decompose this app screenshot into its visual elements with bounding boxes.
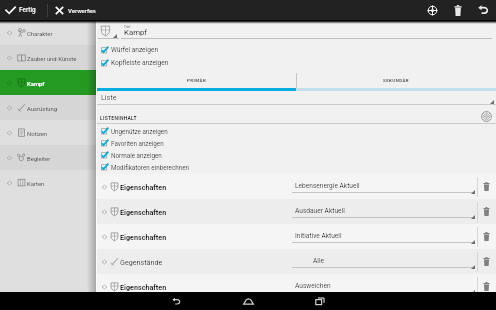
staticText: Liste — [101, 93, 117, 101]
staticText: Eigenschaften — [120, 283, 167, 291]
button[interactable]: Titel — [121, 23, 492, 39]
button[interactable]: Initiative Aktuell — [292, 224, 475, 249]
staticText: Würfel anzeigen — [111, 46, 159, 54]
button[interactable] — [98, 23, 119, 39]
button[interactable]: Gegenstände — [97, 249, 496, 274]
button[interactable]: Alle — [292, 249, 475, 274]
staticText: Notizen — [27, 131, 48, 138]
button[interactable]: Zeile löschen — [480, 280, 493, 293]
button[interactable]: Fertig — [0, 0, 47, 20]
button[interactable] — [97, 91, 496, 105]
staticText: Eigenschaften — [120, 183, 167, 191]
button[interactable]: Eigenschaften — [97, 199, 496, 224]
staticText: Karten — [27, 181, 45, 188]
staticText: Zauber und Künste — [27, 56, 77, 63]
button[interactable]: Würfel anzeigen — [97, 43, 496, 56]
button[interactable]: Übersicht — [298, 292, 342, 310]
staticText: Gegenstände — [120, 258, 163, 266]
button[interactable]: Ausrüstung — [0, 95, 96, 120]
staticText: Kampf — [27, 81, 45, 88]
staticText: Kampf — [124, 28, 148, 37]
button[interactable]: Eigenschaften — [97, 174, 496, 199]
button[interactable]: Zeile löschen — [480, 205, 493, 218]
button[interactable]: Lebensenergie Aktuell — [292, 174, 475, 199]
button[interactable]: Ungenütze anzeigen — [97, 125, 496, 137]
staticText: Alle — [313, 257, 325, 265]
button[interactable]: Verwerfen — [48, 0, 104, 20]
button[interactable]: Normale anzeigen — [97, 149, 496, 161]
button[interactable]: Zauber und Künste — [0, 45, 96, 70]
button[interactable]: Eigenschaften — [97, 274, 496, 299]
button[interactable]: Rückgängig — [470, 0, 496, 20]
staticText: Fertig — [19, 6, 36, 14]
button[interactable]: Hinzufügen — [420, 0, 445, 20]
button[interactable]: Zeile löschen — [480, 230, 493, 243]
button[interactable]: Notizen — [0, 120, 96, 145]
button[interactable]: Kopfleiste anzeigen — [97, 56, 496, 69]
button[interactable]: Löschen — [445, 0, 470, 20]
staticText: Ausdauer Aktuell — [295, 207, 345, 215]
button[interactable]: Modifikatoren einberechnen — [97, 161, 496, 173]
staticText: Favoriten anzeigen — [111, 140, 164, 147]
staticText: SEKUNDÄR — [383, 78, 410, 83]
button[interactable]: Zeile löschen — [480, 255, 493, 268]
staticText: Charakter — [27, 31, 53, 38]
staticText: Ungenütze anzeigen — [111, 128, 168, 135]
button[interactable]: Würfeln — [479, 109, 493, 123]
button[interactable]: Zeile löschen — [480, 180, 493, 193]
button[interactable]: SEKUNDÄR — [296, 71, 496, 91]
staticText: Normale anzeigen — [111, 152, 162, 159]
button[interactable]: Kampf — [0, 70, 96, 95]
staticText: Eigenschaften — [120, 208, 167, 216]
button[interactable]: Karten — [0, 170, 96, 195]
staticText: Kopfleiste anzeigen — [111, 59, 169, 67]
button[interactable]: Ausweichen — [292, 274, 475, 299]
staticText: Ausrüstung — [27, 106, 58, 113]
staticText: Verwerfen — [68, 7, 96, 14]
button[interactable]: PRIMÄR — [97, 71, 296, 91]
staticText: Eigenschaften — [120, 233, 167, 241]
button[interactable]: Eigenschaften — [97, 224, 496, 249]
staticText: Modifikatoren einberechnen — [111, 164, 190, 171]
button[interactable]: Charakter — [0, 20, 96, 45]
staticText: Initiative Aktuell — [295, 232, 342, 240]
button[interactable]: Begleiter — [0, 145, 96, 170]
staticText: LISTENINHALT — [100, 115, 137, 121]
staticText: Lebensenergie Aktuell — [295, 182, 360, 190]
button[interactable]: Zurück — [154, 292, 198, 310]
staticText: PRIMÄR — [187, 78, 207, 83]
button[interactable]: Ausdauer Aktuell — [292, 199, 475, 224]
button[interactable]: Home — [226, 292, 270, 310]
staticText: Titel — [124, 25, 131, 29]
button[interactable]: Favoriten anzeigen — [97, 137, 496, 149]
staticText: Begleiter — [27, 156, 51, 163]
staticText: Ausweichen — [295, 282, 331, 290]
